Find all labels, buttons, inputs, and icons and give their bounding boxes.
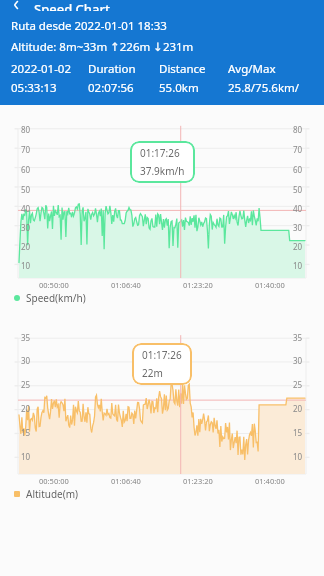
staticText: Avg/Max (228, 61, 276, 77)
staticText: 01:17:26 (140, 146, 180, 160)
staticText: 20 (21, 403, 31, 414)
staticText: 40 (21, 203, 31, 214)
staticText: 01:17:26 (142, 348, 182, 362)
staticText: 60 (293, 164, 303, 175)
staticText: Speed(km/h) (26, 291, 86, 305)
staticText: 01:23:20 (183, 476, 213, 486)
button[interactable]: Back (11, 0, 22, 11)
staticText: 80 (21, 124, 31, 135)
staticText: 30 (293, 355, 303, 366)
staticText: Altitude: 8m~33m ↑226m ↓231m (11, 39, 194, 55)
staticText: 50 (21, 184, 31, 195)
staticText: 25 (21, 379, 31, 390)
staticText: Altitude(m) (26, 487, 79, 501)
staticText: 60 (21, 164, 31, 175)
staticText: 40 (293, 203, 303, 214)
staticText: 10 (293, 451, 303, 462)
staticText: 25 (293, 379, 303, 390)
staticText: 10 (293, 260, 303, 271)
staticText: Distance (159, 61, 206, 77)
staticText: 55.0km (159, 80, 199, 96)
staticText: 80 (293, 124, 303, 135)
staticText: 25.8/75.6km/ (228, 80, 300, 96)
staticText: 05:33:13 (11, 80, 57, 96)
staticText: 35 (293, 332, 303, 343)
staticText: Duration (88, 61, 136, 77)
staticText: 01:40:00 (255, 476, 285, 486)
staticText: 20 (21, 241, 31, 252)
staticText: 70 (21, 144, 31, 155)
button[interactable]: 01:17:26 (140, 146, 185, 178)
staticText: 10 (21, 260, 31, 271)
staticText: 20 (293, 403, 303, 414)
staticText: 01:23:20 (183, 280, 213, 290)
staticText: 01:40:00 (255, 280, 285, 290)
staticText: 30 (293, 222, 303, 233)
staticText: Speed Chart (34, 0, 110, 11)
staticText: 10 (21, 451, 31, 462)
staticText: 2022-01-02 (11, 61, 72, 77)
staticText: 15 (293, 427, 303, 438)
staticText: 01:06:40 (111, 476, 141, 486)
staticText: 00:50:00 (39, 280, 69, 290)
staticText: 70 (293, 144, 303, 155)
staticText: 15 (21, 427, 31, 438)
staticText: 20 (293, 241, 303, 252)
staticText: 35 (21, 332, 31, 343)
staticText: 50 (293, 184, 303, 195)
staticText: 30 (21, 355, 31, 366)
staticText: 30 (21, 222, 31, 233)
staticText: 00:50:00 (39, 476, 69, 486)
button[interactable]: 01:17:26 (142, 348, 182, 380)
staticText: Ruta desde 2022-01-01 18:33 (11, 18, 167, 34)
staticText: 02:07:56 (88, 80, 134, 96)
staticText: 37.9km/h (140, 164, 185, 178)
staticText: 22m (142, 366, 163, 380)
staticText: 01:06:40 (111, 280, 141, 290)
